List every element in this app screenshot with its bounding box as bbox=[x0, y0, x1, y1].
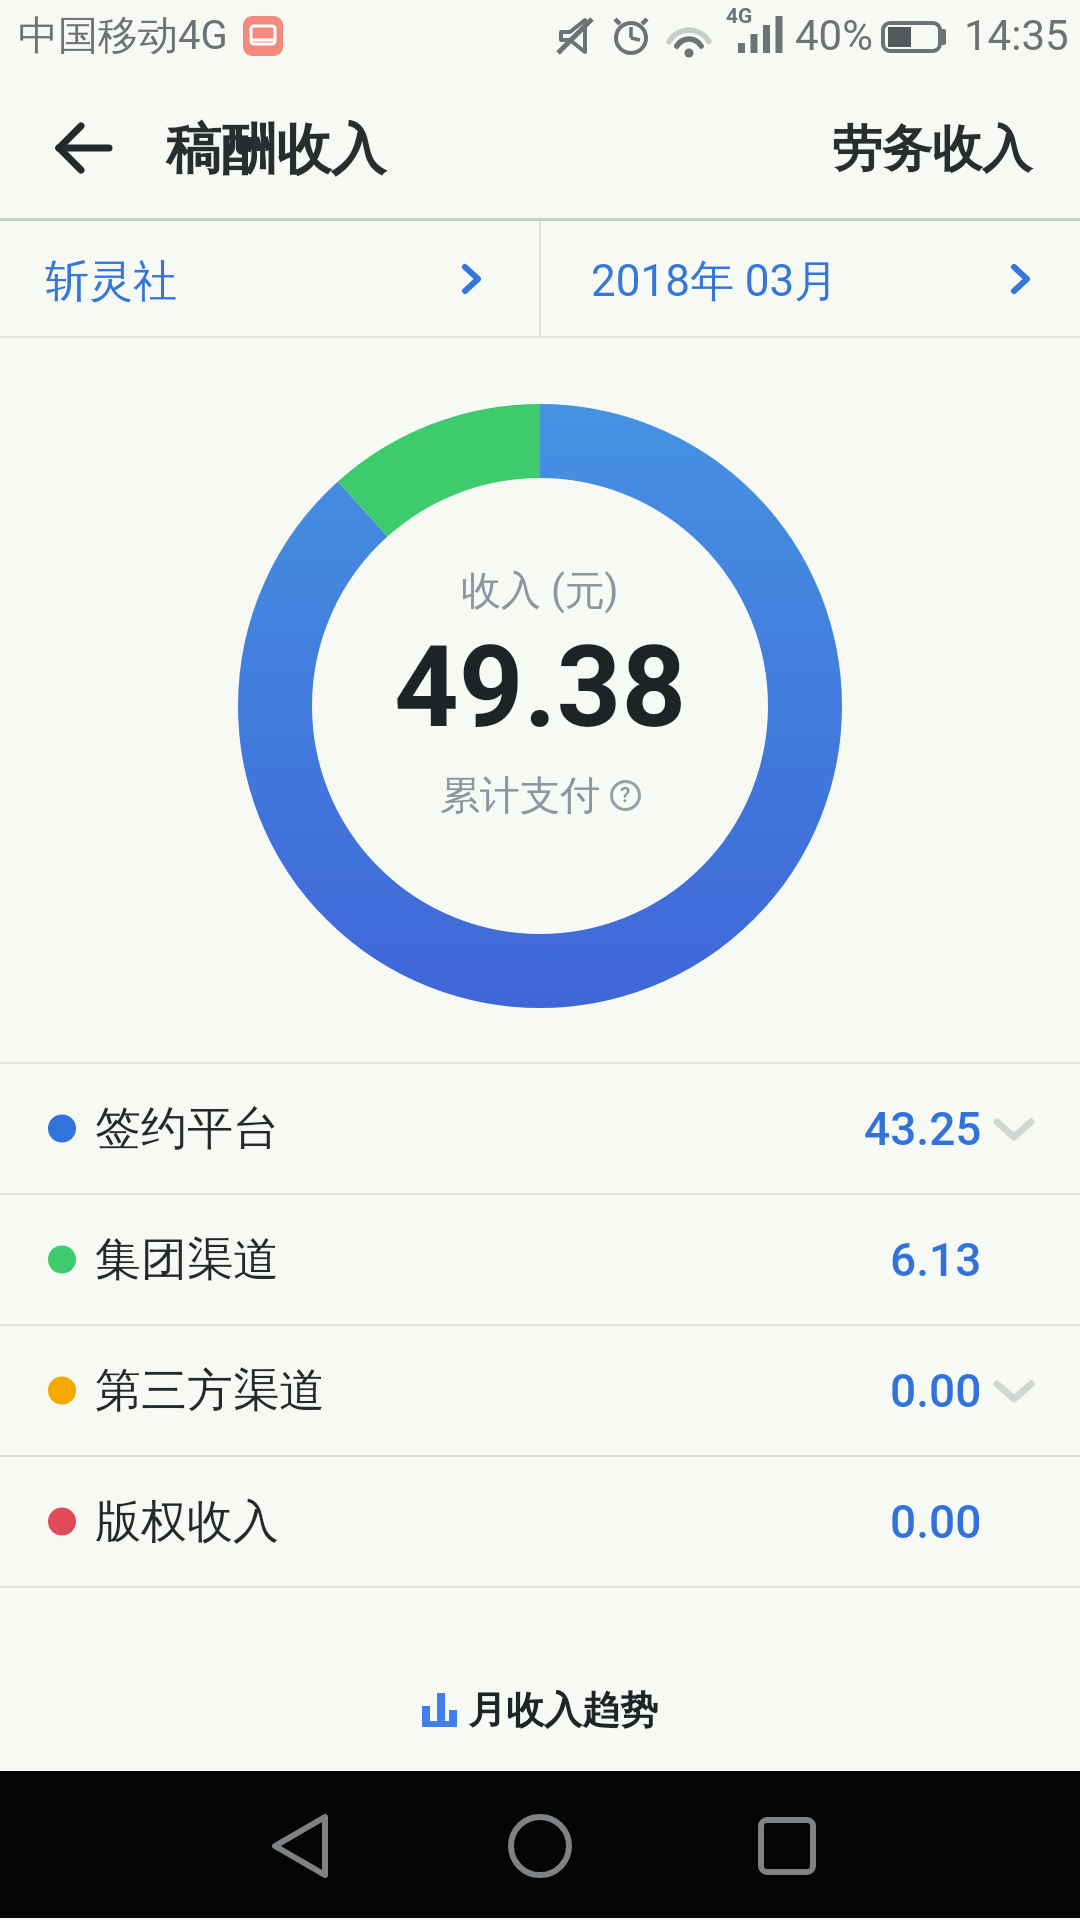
button[interactable]: 2018年 03月 bbox=[541, 221, 1080, 336]
staticText: 中国移动4G bbox=[18, 10, 228, 60]
button[interactable]: 斩灵社 bbox=[0, 221, 539, 336]
staticText: 斩灵社 bbox=[45, 254, 177, 309]
staticText: 劳务收入 bbox=[832, 118, 1032, 181]
staticText: 累计支付 bbox=[440, 770, 600, 820]
staticText: 6.13 bbox=[890, 1233, 982, 1287]
button[interactable] bbox=[480, 1796, 600, 1896]
staticText: 第三方渠道 bbox=[95, 1362, 325, 1420]
button[interactable]: 劳务收入 bbox=[0, 75, 1032, 223]
staticText: 收入 (元) bbox=[461, 565, 619, 615]
staticText: 版权收入 bbox=[95, 1493, 279, 1551]
staticText: 月收入趋势 bbox=[468, 1686, 658, 1734]
staticText: 集团渠道 bbox=[95, 1231, 279, 1289]
button[interactable]: 版权收入 bbox=[0, 1457, 1080, 1586]
button[interactable]: 月收入趋势 bbox=[422, 1686, 658, 1734]
staticText: 2018年 03月 bbox=[591, 254, 839, 309]
button[interactable] bbox=[240, 1796, 360, 1896]
staticText: 签约平台 bbox=[95, 1100, 279, 1158]
button[interactable]: 第三方渠道 bbox=[0, 1326, 1080, 1455]
button[interactable]: 集团渠道 bbox=[0, 1195, 1080, 1324]
staticText: 4G bbox=[726, 4, 753, 29]
button[interactable] bbox=[40, 103, 130, 193]
staticText: 0.00 bbox=[890, 1364, 982, 1418]
staticText: 14:35 bbox=[964, 11, 1069, 60]
staticText: 0.00 bbox=[890, 1495, 982, 1549]
staticText: 40% bbox=[795, 11, 873, 60]
staticText: ? bbox=[620, 783, 631, 808]
staticText: 稿酬收入 bbox=[166, 115, 386, 184]
staticText: 49.38 bbox=[394, 621, 687, 753]
button[interactable] bbox=[727, 1796, 847, 1896]
staticText: 43.25 bbox=[864, 1102, 982, 1156]
button[interactable]: 签约平台 bbox=[0, 1064, 1080, 1193]
